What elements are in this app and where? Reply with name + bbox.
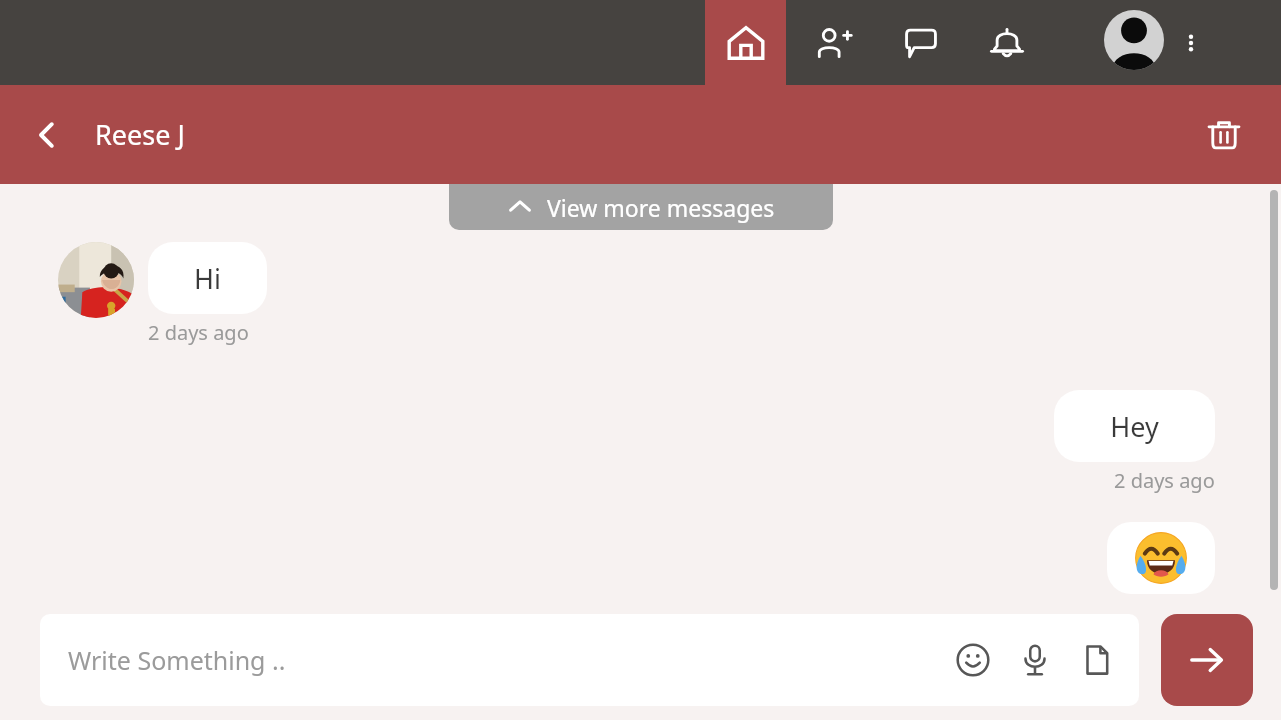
button[interactable]: Home <box>705 0 786 85</box>
button[interactable]: Messages <box>881 0 961 85</box>
button[interactable]: Voice message <box>1007 632 1063 688</box>
button[interactable]: Delete conversation <box>1193 104 1255 166</box>
button[interactable]: Notifications <box>967 0 1047 85</box>
staticText: Hi <box>194 260 221 297</box>
staticText: 2 days ago <box>148 319 249 346</box>
staticText: Hey <box>1110 408 1159 445</box>
button[interactable]: More options <box>1168 0 1214 85</box>
button[interactable]: Attach file <box>1069 632 1125 688</box>
button[interactable]: Emoji <box>945 632 1001 688</box>
staticText: 2 days ago <box>1114 467 1215 494</box>
staticText: View more messages <box>547 192 775 223</box>
button[interactable]: Back <box>16 104 78 166</box>
button[interactable]: Profile <box>1104 10 1164 70</box>
staticText: Reese J <box>95 116 185 153</box>
button[interactable] <box>1107 522 1215 594</box>
button[interactable]: View more messages <box>449 184 833 230</box>
button[interactable]: Hey <box>1054 390 1215 462</box>
button[interactable]: Write Something .. <box>40 614 1139 706</box>
staticText: Write Something .. <box>68 643 945 677</box>
button[interactable]: Hi <box>148 242 267 314</box>
button[interactable]: Add friend <box>793 0 873 85</box>
button[interactable]: Send <box>1161 614 1253 706</box>
